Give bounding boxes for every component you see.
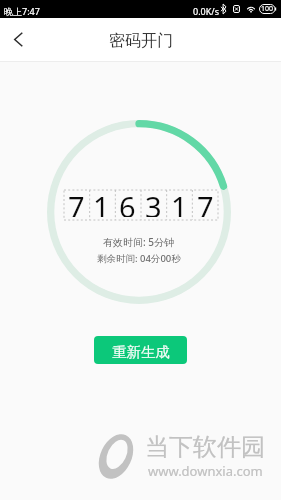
staticText: 1	[93, 187, 110, 217]
staticText: 100	[261, 4, 274, 14]
staticText: 6	[119, 187, 136, 217]
staticText: 7	[68, 187, 85, 217]
staticText: 晚上7:47	[4, 5, 40, 17]
staticText: 当下软件园	[145, 432, 265, 462]
staticText: 有效时间: 5分钟	[103, 235, 175, 249]
button[interactable]: 重新生成	[94, 336, 187, 364]
staticText: 剩余时间: 04分00秒	[97, 252, 181, 265]
staticText: 密码开门	[109, 31, 173, 51]
staticText: 7	[197, 187, 214, 217]
staticText: 1	[171, 187, 188, 217]
staticText: 0.0K/s	[193, 5, 219, 17]
button[interactable]: Back	[0, 22, 36, 58]
staticText: www.downxia.com	[148, 462, 263, 480]
staticText: 3	[145, 187, 162, 217]
staticText: 重新生成	[112, 343, 170, 361]
